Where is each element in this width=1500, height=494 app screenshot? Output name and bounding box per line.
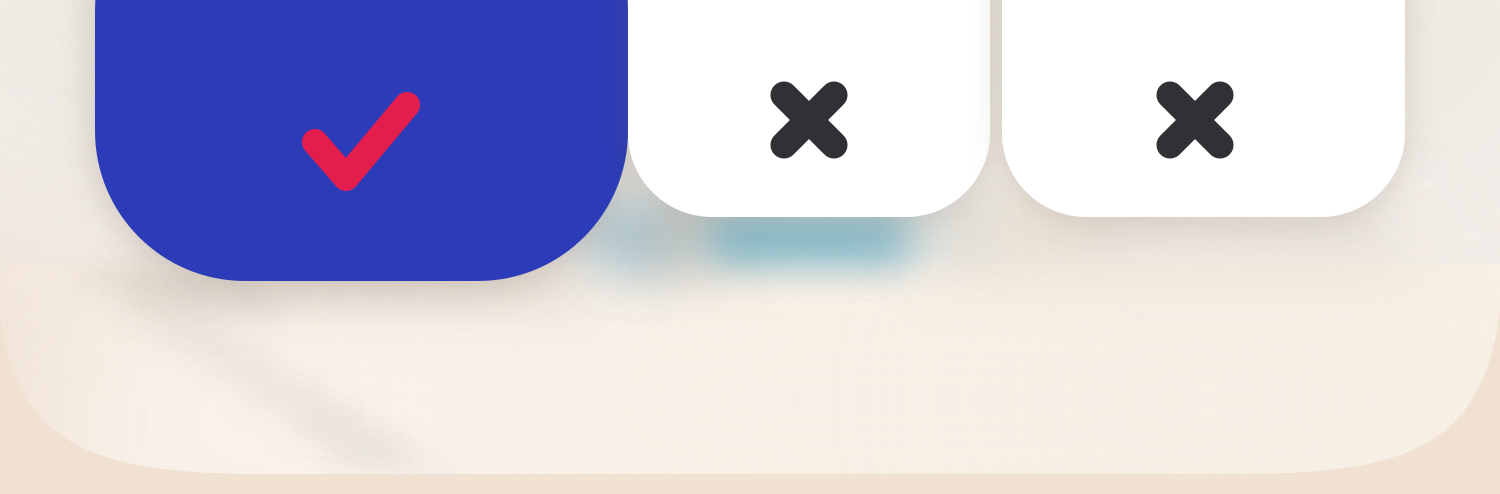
button[interactable]: Skip photo — [1002, 0, 1405, 217]
button[interactable]: Discard photo — [628, 0, 990, 217]
button[interactable]: Keep photo — [95, 0, 628, 281]
